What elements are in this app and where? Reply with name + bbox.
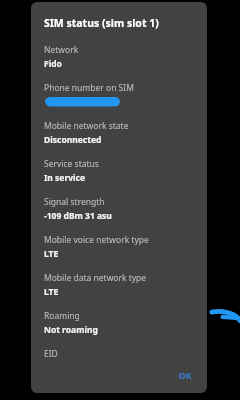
button[interactable]: OK — [171, 365, 199, 385]
other: Redaction mark — [210, 307, 240, 323]
staticText: EID — [44, 348, 58, 360]
staticText: Network — [44, 44, 79, 56]
staticText: Not roaming — [44, 324, 98, 336]
staticText: Fido — [44, 58, 62, 70]
staticText: LTE — [44, 248, 59, 260]
staticText: -109 dBm 31 asu — [44, 210, 112, 222]
staticText: In service — [44, 172, 86, 184]
staticText: Signal strength — [44, 196, 105, 208]
staticText: Phone number on SIM — [44, 82, 134, 94]
staticText: Disconnected — [44, 134, 102, 146]
staticText: Mobile data network type — [44, 272, 147, 284]
staticText: OK — [178, 369, 192, 381]
staticText: Roaming — [44, 310, 80, 322]
staticText: Mobile voice network type — [44, 234, 149, 246]
staticText: Mobile network state — [44, 120, 129, 132]
staticText: SIM status (sim slot 1) — [44, 16, 159, 30]
staticText: LTE — [44, 286, 59, 298]
staticText: Service status — [44, 158, 99, 170]
